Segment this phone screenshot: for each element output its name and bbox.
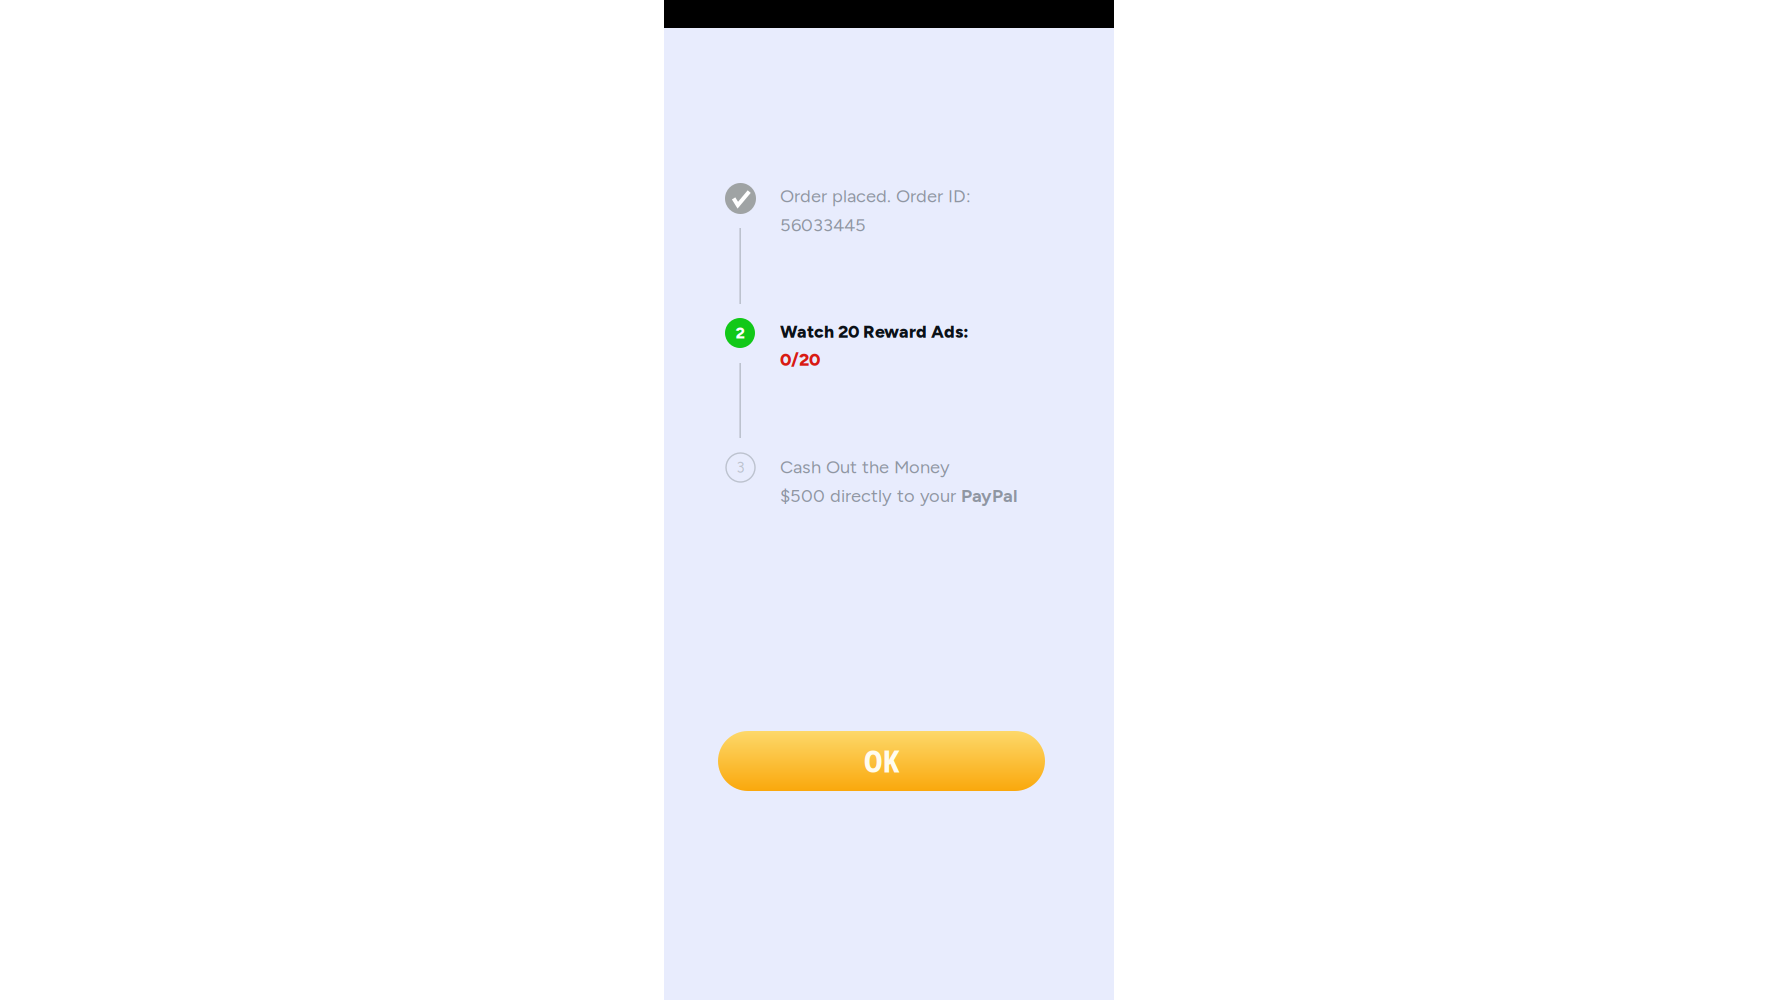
staticText: Order placed. Order ID:: [780, 185, 971, 207]
staticText: Cash Out the Money: [780, 456, 950, 478]
staticText: 3: [736, 459, 744, 476]
staticText: $500 directly to your PayPal: [780, 485, 1017, 506]
staticText: 2: [735, 323, 744, 343]
staticText: 0/20: [780, 349, 820, 370]
staticText: 56033445: [780, 214, 866, 236]
button[interactable]: OK: [718, 731, 1045, 791]
staticText: OK: [863, 741, 899, 781]
staticText: Watch 20 Reward Ads:: [780, 321, 969, 342]
